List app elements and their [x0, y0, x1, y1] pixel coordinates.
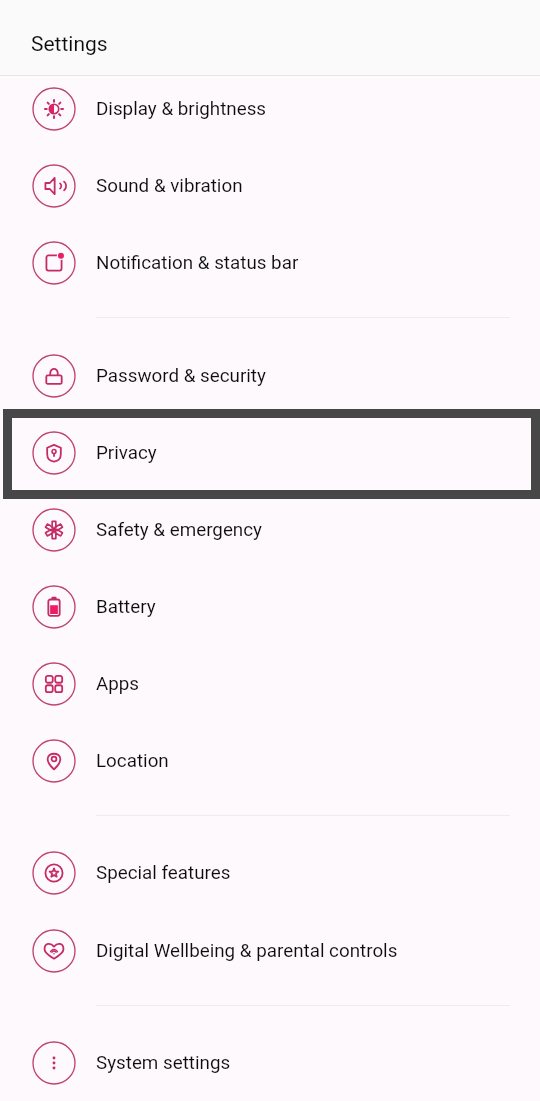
button[interactable]: Password & security — [0, 337, 540, 414]
other: Notification & status bar — [32, 241, 76, 285]
button[interactable]: Special features — [0, 834, 540, 911]
button[interactable]: Battery — [0, 568, 540, 645]
button[interactable]: Privacy — [0, 414, 540, 491]
other: System settings — [32, 1041, 76, 1085]
button[interactable]: Sound & vibration — [0, 147, 540, 224]
other: Password & security — [32, 354, 76, 398]
other: Digital Wellbeing & parental controls — [32, 929, 76, 973]
other: Apps — [32, 662, 76, 706]
other: Display & brightness — [32, 87, 76, 131]
staticText: Digital Wellbeing & parental controls — [96, 940, 398, 962]
other: Sound & vibration — [32, 164, 76, 208]
button[interactable]: System settings — [0, 1024, 540, 1101]
button[interactable]: Digital Wellbeing & parental controls — [0, 912, 540, 989]
other: Privacy — [32, 431, 76, 475]
staticText: Privacy — [96, 442, 157, 464]
staticText: Sound & vibration — [96, 175, 243, 197]
button[interactable]: Settings — [0, 0, 540, 76]
staticText: Battery — [96, 596, 156, 618]
button[interactable]: Location — [0, 722, 540, 799]
other: Safety & emergency — [32, 508, 76, 552]
button[interactable]: Safety & emergency — [0, 491, 540, 568]
staticText: Settings — [31, 32, 108, 57]
other: Battery — [32, 585, 76, 629]
button[interactable]: Display & brightness — [0, 70, 540, 147]
staticText: Notification & status bar — [96, 252, 299, 274]
staticText: Display & brightness — [96, 98, 267, 120]
button[interactable]: Notification & status bar — [0, 224, 540, 301]
staticText: Apps — [96, 673, 140, 695]
staticText: Special features — [96, 862, 231, 884]
button[interactable]: Apps — [0, 645, 540, 722]
other: Special features — [32, 851, 76, 895]
staticText: System settings — [96, 1052, 231, 1074]
staticText: Location — [96, 750, 169, 772]
other: Location — [32, 739, 76, 783]
staticText: Safety & emergency — [96, 519, 262, 541]
staticText: Password & security — [96, 365, 266, 387]
